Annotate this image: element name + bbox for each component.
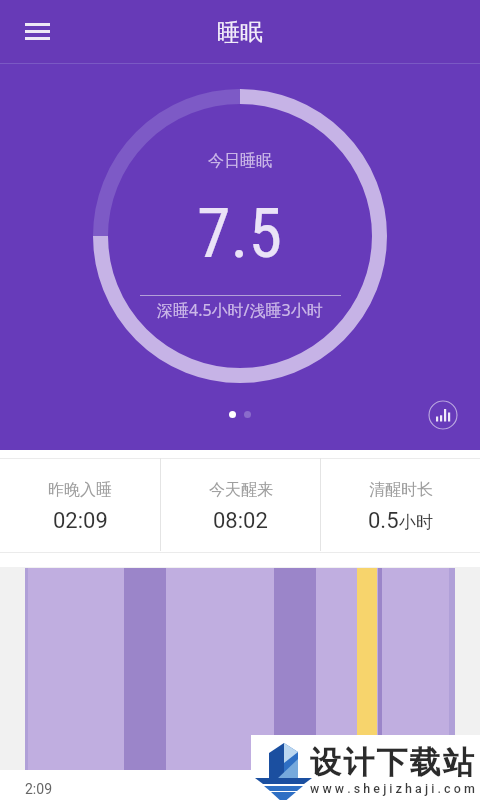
staticText: 今天醒来 <box>209 480 273 500</box>
button[interactable]: 清醒时长 <box>321 450 480 567</box>
button[interactable]: 今天醒来 <box>161 450 320 567</box>
staticText: 睡眠 <box>217 18 263 47</box>
staticText: 7.5 <box>197 194 283 274</box>
staticText: 08:02 <box>213 508 268 534</box>
button[interactable]: Statistics <box>428 400 458 430</box>
staticText: 清醒时长 <box>369 480 433 500</box>
staticText: 今日睡眠 <box>208 151 272 171</box>
staticText: 小时 <box>399 512 433 533</box>
staticText: 2:09 <box>25 781 52 797</box>
staticText: w w w . s h e j i z h a j i . c o m <box>310 781 475 796</box>
staticText: 0.5 <box>368 508 399 534</box>
staticText: 02:09 <box>53 508 108 534</box>
button[interactable]: 昨晚入睡 <box>0 450 160 567</box>
button[interactable]: Menu <box>13 10 57 54</box>
staticText: 设计下载站 <box>309 743 475 782</box>
staticText: 昨晚入睡 <box>48 480 112 500</box>
staticText: 深睡4.5小时/浅睡3小时 <box>157 299 323 321</box>
